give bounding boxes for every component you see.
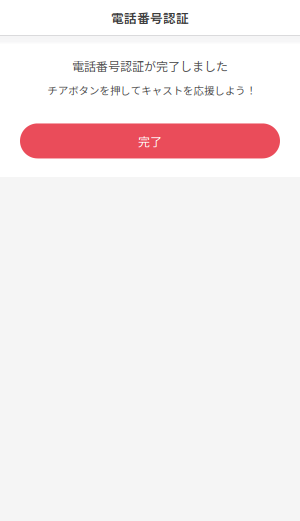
- staticText: チアボタンを押してキャストを応援しよう！: [47, 82, 256, 97]
- button[interactable]: 完了: [20, 123, 280, 158]
- staticText: 完了: [138, 132, 162, 150]
- staticText: 電話番号認証: [111, 8, 189, 27]
- staticText: 電話番号認証が完了しました: [72, 57, 228, 74]
